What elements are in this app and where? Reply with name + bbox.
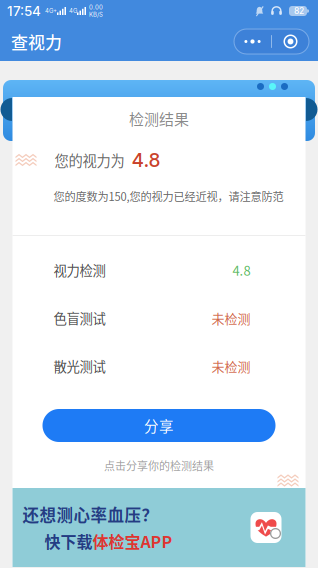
- staticText: 色盲测试: [53, 308, 105, 328]
- button[interactable]: 视力检测: [12, 246, 305, 294]
- staticText: 4G: [69, 7, 77, 14]
- staticText: 视力检测: [53, 260, 105, 280]
- staticText: 还想测心率血压？: [22, 502, 158, 526]
- staticText: 查视力: [11, 29, 62, 54]
- button[interactable]: Close: [272, 29, 309, 54]
- staticText: 4G+: [45, 7, 57, 14]
- button[interactable]: 色盲测试: [12, 294, 305, 342]
- staticText: 未检测: [211, 357, 250, 375]
- staticText: 您的度数为150,您的视力已经近视，请注意防范: [53, 188, 283, 204]
- staticText: 点击分享你的检测结果: [104, 457, 214, 473]
- staticText: 散光测试: [53, 356, 105, 376]
- button[interactable]: More: [234, 29, 271, 54]
- button[interactable]: 分享: [42, 409, 275, 442]
- staticText: 0.00: [89, 4, 103, 11]
- staticText: 您的视力为: [54, 150, 124, 170]
- button[interactable]: 还想测心率血压？: [12, 488, 305, 567]
- staticText: 分享: [144, 415, 174, 436]
- staticText: 体检宝APP: [92, 529, 172, 553]
- staticText: KB/S: [89, 11, 103, 18]
- staticText: 未检测: [211, 309, 250, 327]
- staticText: 82: [294, 6, 304, 16]
- staticText: 4.8: [131, 148, 160, 171]
- staticText: 快下载: [44, 529, 92, 553]
- staticText: 17:54: [7, 3, 41, 19]
- staticText: 4.8: [232, 261, 250, 279]
- staticText: 检测结果: [129, 108, 189, 129]
- button[interactable]: 散光测试: [12, 342, 305, 390]
